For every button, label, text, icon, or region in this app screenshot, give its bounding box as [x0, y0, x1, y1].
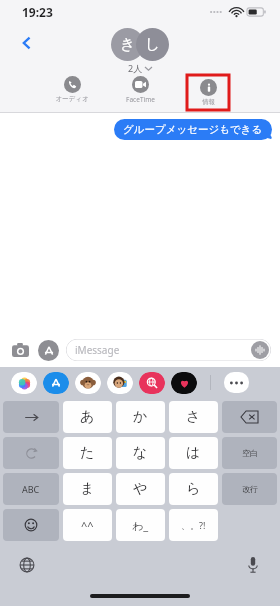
- button[interactable]: わ_: [116, 509, 165, 541]
- button[interactable]: ら: [169, 473, 218, 505]
- staticText: き: [120, 35, 136, 54]
- staticText: 改行: [242, 484, 258, 494]
- staticText: ら: [186, 480, 201, 498]
- staticText: グループメッセージもできる: [123, 123, 263, 136]
- staticText: ^^: [81, 518, 94, 533]
- button[interactable]: Audio message: [251, 341, 269, 359]
- button[interactable]: は: [169, 437, 218, 469]
- button[interactable]: ま: [63, 473, 112, 505]
- staticText: は: [186, 444, 201, 462]
- staticText: iMessage: [75, 343, 120, 357]
- staticText: わ_: [132, 518, 149, 533]
- button[interactable]: More apps: [224, 372, 249, 393]
- button[interactable]: Memoji monkey: [75, 372, 101, 394]
- button[interactable]: Camera: [9, 339, 31, 361]
- staticText: 、。?!: [181, 519, 206, 531]
- button[interactable]: た: [63, 437, 112, 469]
- staticText: あ: [80, 408, 95, 426]
- button[interactable]: き: [111, 27, 169, 74]
- button[interactable]: 改行: [222, 473, 277, 505]
- button[interactable]: オーディオ: [51, 75, 93, 104]
- button[interactable]: あ: [63, 401, 112, 433]
- staticText: や: [133, 480, 148, 498]
- button[interactable]: 、。?!: [169, 509, 218, 541]
- button[interactable]: FaceTime: [119, 75, 161, 105]
- staticText: た: [80, 444, 95, 462]
- button[interactable]: ^^: [63, 509, 112, 541]
- button[interactable]: App Store: [38, 340, 59, 361]
- button[interactable]: グループメッセージもできる: [114, 119, 272, 140]
- staticText: さ: [186, 408, 201, 426]
- button[interactable]: Photos: [11, 372, 37, 394]
- staticText: 情報: [202, 98, 215, 106]
- staticText: か: [133, 408, 148, 426]
- staticText: ま: [80, 480, 95, 498]
- button[interactable]: な: [116, 437, 165, 469]
- button[interactable]: [222, 401, 277, 433]
- button[interactable]: iMessage: [66, 339, 271, 361]
- button[interactable]: Dictation: [240, 552, 266, 578]
- staticText: 空白: [242, 448, 258, 458]
- button[interactable]: Images search: [139, 372, 165, 394]
- staticText: し: [145, 35, 161, 54]
- button[interactable]: 情報: [187, 78, 229, 107]
- button[interactable]: [3, 437, 59, 469]
- staticText: 19:23: [22, 4, 53, 20]
- staticText: な: [133, 444, 148, 462]
- button[interactable]: や: [116, 473, 165, 505]
- button[interactable]: Memoji person: [107, 372, 133, 394]
- button[interactable]: さ: [169, 401, 218, 433]
- button[interactable]: か: [116, 401, 165, 433]
- button[interactable]: [3, 509, 59, 541]
- button[interactable]: 空白: [222, 437, 277, 469]
- button[interactable]: Switch keyboard: [14, 552, 40, 578]
- staticText: FaceTime: [126, 95, 155, 104]
- button[interactable]: ABC: [3, 473, 59, 505]
- staticText: オーディオ: [55, 95, 89, 103]
- button[interactable]: [3, 401, 59, 433]
- button[interactable]: App Store: [43, 372, 69, 394]
- button[interactable]: Digital Touch: [171, 372, 197, 394]
- staticText: ABC: [22, 483, 40, 495]
- button[interactable]: Back: [10, 26, 44, 60]
- staticText: 2人: [128, 62, 143, 74]
